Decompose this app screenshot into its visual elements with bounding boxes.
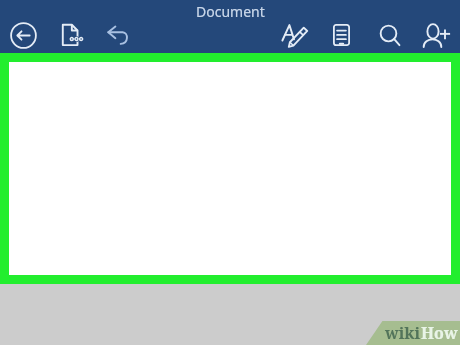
button[interactable]: Format text <box>282 24 308 48</box>
button[interactable]: Undo <box>108 24 129 45</box>
staticText: wiki <box>385 322 421 344</box>
button[interactable]: Back <box>10 22 37 49</box>
button[interactable]: Search <box>379 24 402 47</box>
button[interactable]: Document options <box>62 24 84 46</box>
staticText: How <box>421 322 458 344</box>
button[interactable]: Mobile view <box>333 24 350 46</box>
staticText: Document <box>196 2 265 21</box>
button[interactable]: Add people <box>422 22 451 49</box>
